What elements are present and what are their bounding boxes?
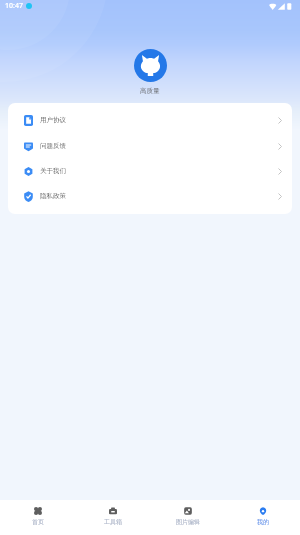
button[interactable]: 用户协议: [8, 107, 292, 133]
staticText: 我的: [257, 518, 269, 526]
staticText: 高质量: [140, 87, 160, 95]
button[interactable]: 工具箱: [75, 500, 150, 535]
staticText: 图片编辑: [176, 518, 200, 526]
staticText: 用户协议: [40, 116, 66, 124]
staticText: 工具箱: [104, 518, 122, 526]
staticText: 10:47: [5, 1, 23, 11]
button[interactable]: 图片编辑: [150, 500, 225, 535]
button[interactable]: 关于我们: [8, 158, 292, 184]
button[interactable]: 隐私政策: [8, 183, 292, 209]
button[interactable]: 我的: [225, 500, 300, 535]
staticText: 问题反馈: [40, 142, 66, 150]
button[interactable]: 首页: [0, 500, 75, 535]
staticText: 首页: [32, 518, 44, 526]
staticText: 隐私政策: [40, 192, 66, 200]
button[interactable]: 问题反馈: [8, 133, 292, 159]
staticText: 关于我们: [40, 167, 66, 175]
